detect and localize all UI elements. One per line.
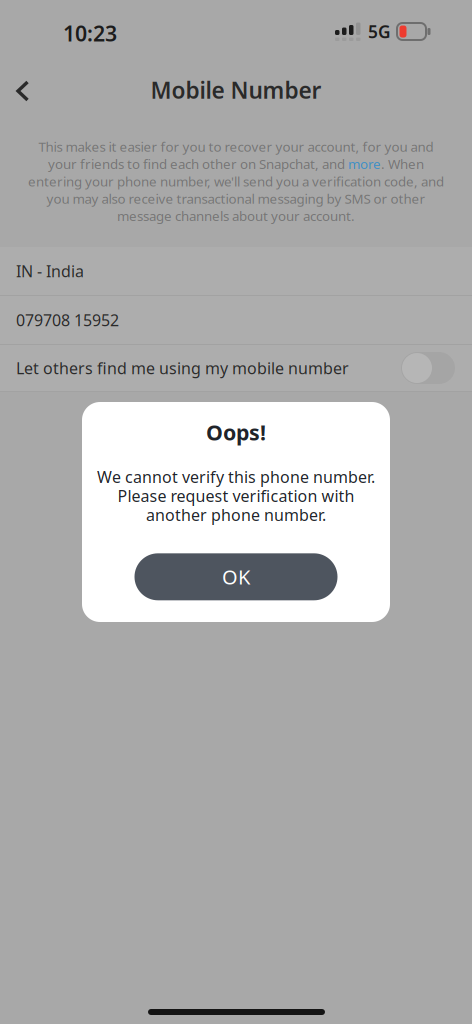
staticText: OK	[222, 564, 250, 590]
staticText: message channels about your account.	[117, 207, 355, 225]
button[interactable]: 079708 15952	[0, 296, 472, 344]
button[interactable]: more	[348, 155, 381, 173]
staticText: IN - India	[16, 260, 84, 282]
staticText: 5G	[368, 20, 391, 43]
staticText: This makes it easier for you to recover …	[38, 138, 433, 155]
staticText: your friends to find each other on Snapc…	[48, 155, 348, 173]
staticText: We cannot verify this phone number.	[97, 466, 375, 487]
staticText: entering your phone number, we'll send y…	[28, 172, 444, 190]
staticText: . When	[381, 155, 424, 173]
button[interactable]: Back	[0, 58, 52, 114]
staticText: 10:23	[63, 19, 117, 47]
staticText: 079708 15952	[16, 309, 119, 331]
staticText: Mobile Number	[150, 75, 321, 105]
staticText: Please request verification with	[117, 485, 354, 506]
staticText: you may also receive transactional messa…	[46, 190, 425, 207]
button[interactable]: OK	[134, 553, 337, 600]
button[interactable]: Let others find me using my mobile numbe…	[0, 345, 472, 391]
staticText: more	[348, 155, 381, 173]
staticText: another phone number.	[146, 504, 326, 525]
staticText: Let others find me using my mobile numbe…	[16, 357, 349, 379]
staticText: Oops!	[206, 418, 266, 446]
button[interactable]: IN - India	[0, 247, 472, 295]
